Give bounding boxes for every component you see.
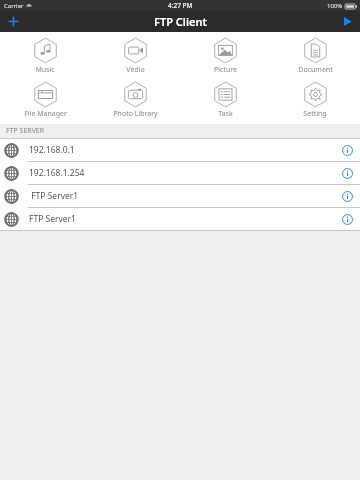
button[interactable]: Server info	[336, 208, 358, 230]
staticText: FTP Server1	[29, 190, 336, 202]
button[interactable]: Photo Library	[90, 81, 180, 119]
button[interactable]: Document	[270, 37, 360, 75]
staticText: FTP Client	[154, 14, 207, 29]
button[interactable]: 192.168.0.1	[0, 139, 360, 161]
button[interactable]: Server info	[336, 162, 358, 184]
staticText: 192.168.1.254	[29, 167, 336, 179]
staticText: Vedio	[126, 65, 145, 75]
staticText: File Manager	[24, 109, 67, 119]
staticText: FTP Server1	[29, 213, 336, 225]
staticText: FTP SERVER	[6, 126, 45, 136]
button[interactable]: FTP Server1	[0, 208, 360, 230]
button[interactable]: Setting	[270, 81, 360, 119]
button[interactable]: Connect	[334, 11, 360, 32]
button[interactable]: Picture	[180, 37, 270, 75]
staticText: 4:27 PM	[168, 1, 193, 10]
staticText: 100%	[327, 2, 343, 10]
button[interactable]: Music	[0, 37, 90, 75]
button[interactable]: Add server	[0, 11, 26, 32]
button[interactable]: FTP Server1	[0, 185, 360, 207]
button[interactable]: Vedio	[90, 37, 180, 75]
staticText: Picture	[214, 65, 237, 75]
staticText: Task	[218, 109, 233, 119]
button[interactable]: Server info	[336, 139, 358, 161]
staticText: 192.168.0.1	[29, 144, 336, 156]
button[interactable]: 192.168.1.254	[0, 162, 360, 184]
button[interactable]: Task	[180, 81, 270, 119]
staticText: Photo Library	[113, 109, 158, 119]
button[interactable]: Server info	[336, 185, 358, 207]
button[interactable]: File Manager	[0, 81, 90, 119]
staticText: Music	[35, 65, 55, 75]
staticText: Document	[298, 65, 333, 75]
staticText: Carrier	[4, 2, 24, 10]
staticText: Setting	[303, 109, 327, 119]
